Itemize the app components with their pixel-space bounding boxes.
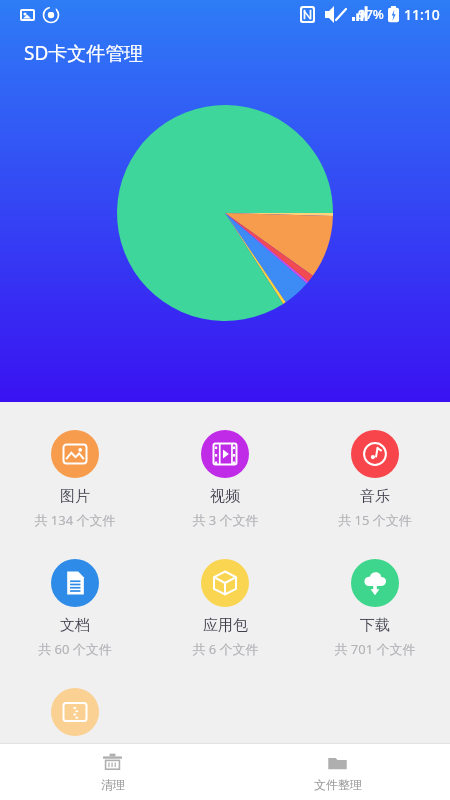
staticText: 音乐 — [360, 487, 390, 506]
button[interactable]: 视频 — [150, 426, 300, 533]
button[interactable]: 文档 — [0, 555, 150, 662]
staticText: 共 701 个文件 — [334, 640, 416, 658]
staticText: 97% — [358, 5, 384, 23]
staticText: 共 134 个文件 — [34, 511, 116, 529]
staticText: 共 6 个文件 — [192, 640, 259, 658]
staticText: 共 60 个文件 — [38, 640, 112, 658]
staticText: 11:10 — [404, 5, 440, 24]
button[interactable]: 图片 — [0, 426, 150, 533]
button[interactable]: 音乐 — [300, 426, 450, 533]
staticText: 共 3 个文件 — [192, 511, 259, 529]
button[interactable]: 清理 — [0, 744, 225, 800]
staticText: 文档 — [60, 616, 90, 635]
staticText: 视频 — [210, 487, 240, 506]
staticText: 应用包 — [203, 616, 248, 635]
staticText: 图片 — [60, 487, 90, 506]
button[interactable]: 下载 — [300, 555, 450, 662]
staticText: 下载 — [360, 616, 390, 635]
button[interactable]: 文件整理 — [225, 744, 450, 800]
staticText: 清理 — [101, 777, 125, 792]
staticText: 共 15 个文件 — [338, 511, 412, 529]
staticText: SD卡文件管理 — [24, 40, 144, 66]
button[interactable]: 应用包 — [150, 555, 300, 662]
staticText: 文件整理 — [314, 777, 362, 792]
button[interactable]: 压缩包 — [0, 684, 150, 743]
